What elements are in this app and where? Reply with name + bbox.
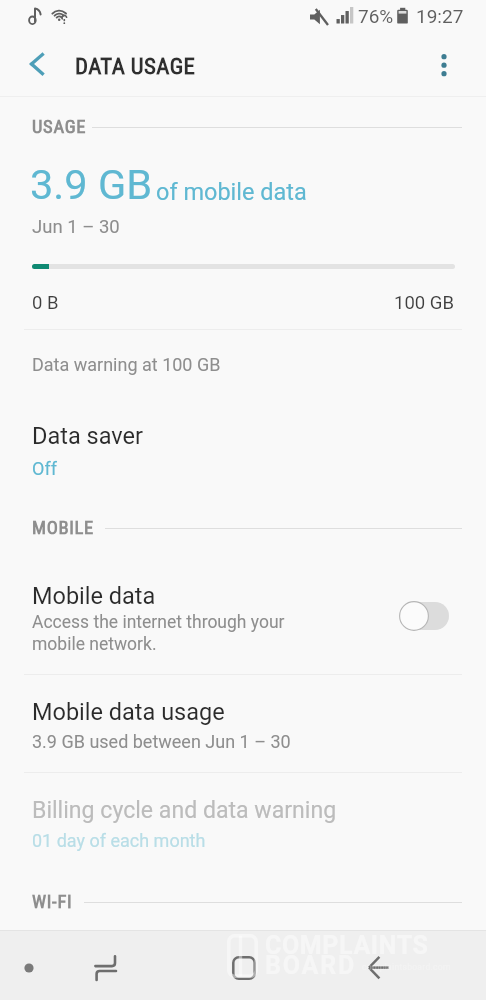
staticText: DATA USAGE (75, 53, 196, 80)
button[interactable]: Home (211, 930, 275, 1000)
staticText: 3.9 GB (30, 160, 153, 209)
staticText: COMPLAINTS (265, 931, 429, 960)
staticText: Data warning at 100 GB (32, 354, 221, 375)
button[interactable]: Data warning at 100 GB (0, 342, 486, 386)
button[interactable]: Mobile data (0, 576, 486, 672)
button[interactable]: Menu (0, 930, 64, 1000)
staticText: Mobile data (32, 582, 156, 610)
staticText: 3.9 GB used between Jun 1 – 30 (32, 731, 291, 752)
staticText: 76% (358, 5, 394, 27)
button[interactable]: More options (423, 44, 465, 86)
staticText: Data saver (32, 422, 143, 450)
staticText: of mobile data (156, 178, 307, 206)
staticText: 19:27 (416, 5, 464, 27)
staticText: Billing cycle and data warning (32, 797, 337, 824)
staticText: USAGE (32, 116, 87, 138)
staticText: Mobile data usage (32, 698, 225, 726)
button[interactable]: Recents (75, 930, 139, 1000)
button[interactable]: Billing cycle and data warning (0, 791, 486, 863)
staticText: BOARD (265, 951, 357, 980)
staticText: 01 day of each month (32, 830, 206, 851)
button[interactable]: Mobile data toggle (399, 601, 449, 631)
staticText: Off (32, 458, 57, 479)
staticText: 0 B (32, 292, 59, 314)
staticText: complaintsboard.com (362, 962, 451, 972)
button[interactable]: Back (16, 44, 58, 86)
staticText: MOBILE (32, 517, 95, 539)
button[interactable]: Back (347, 930, 411, 1000)
staticText: WI-FI (32, 891, 73, 913)
button[interactable]: Data saver (0, 414, 486, 486)
button[interactable]: Mobile data usage (0, 692, 486, 764)
staticText: Access the internet through your mobile … (32, 612, 285, 654)
staticText: Jun 1 – 30 (32, 216, 120, 238)
staticText: 100 GB (394, 292, 454, 314)
